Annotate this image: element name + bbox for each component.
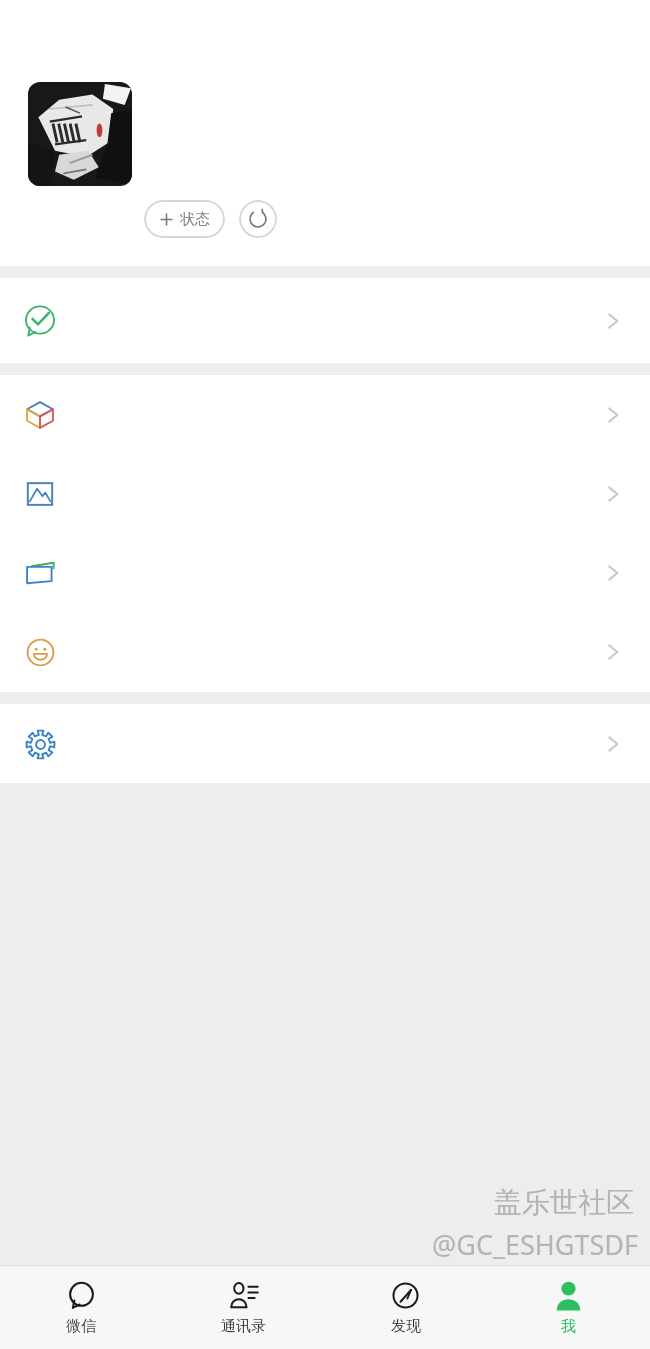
staticText: @GC_ESHGTSDF [0, 1226, 638, 1263]
button[interactable] [0, 533, 650, 612]
button[interactable] [28, 82, 132, 186]
button[interactable]: 我 [487, 1266, 650, 1349]
button[interactable]: 状态 [0, 0, 650, 266]
button[interactable]: Refresh status [239, 200, 277, 238]
button[interactable] [0, 612, 650, 692]
staticText: 通讯录 [221, 1317, 266, 1336]
staticText: 我 [561, 1317, 576, 1336]
button[interactable] [0, 454, 650, 533]
button[interactable]: 通讯录 [162, 1266, 324, 1349]
staticText: 状态 [180, 210, 210, 229]
staticText: 发现 [391, 1317, 421, 1336]
button[interactable]: 微信 [0, 1266, 162, 1349]
button[interactable]: 状态 [144, 200, 225, 238]
button[interactable]: 发现 [324, 1266, 487, 1349]
staticText: 微信 [66, 1317, 96, 1336]
button[interactable] [0, 704, 650, 783]
staticText: 盖乐世社区 [0, 1185, 634, 1220]
button[interactable] [0, 278, 650, 363]
button[interactable] [0, 375, 650, 454]
